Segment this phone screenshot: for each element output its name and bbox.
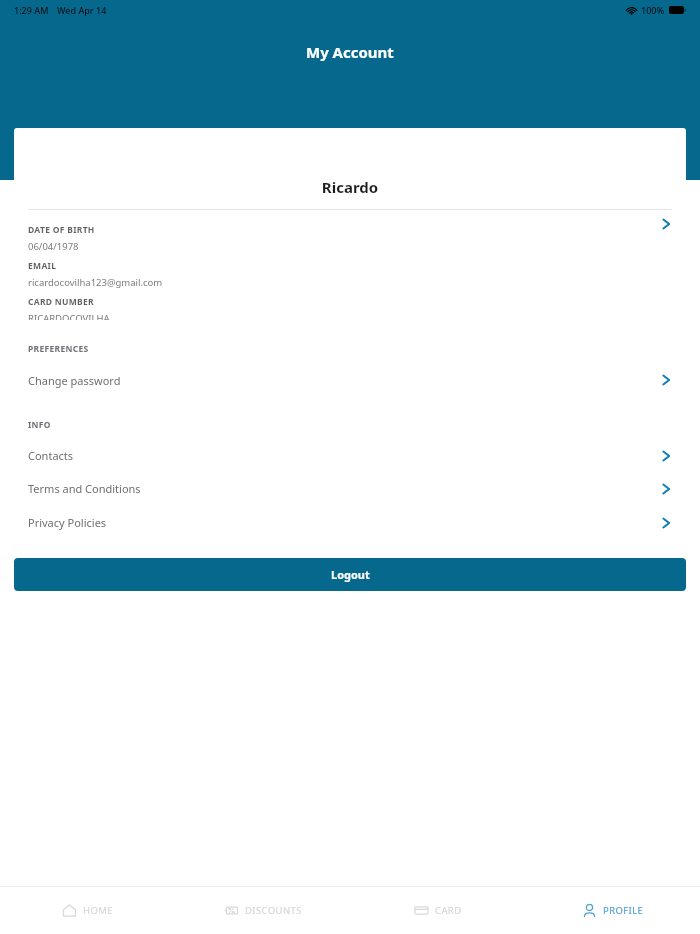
staticText: Wed Apr 14 xyxy=(57,4,107,16)
staticText: CARD xyxy=(435,904,462,917)
staticText: RICARDOCOVILHA xyxy=(28,312,110,320)
staticText: Logout xyxy=(331,567,370,582)
button[interactable]: Privacy Policies xyxy=(14,505,686,540)
staticText: DISCOUNTS xyxy=(245,904,302,917)
button[interactable]: PROFILE xyxy=(525,887,700,934)
button[interactable]: DISCOUNTS xyxy=(175,887,350,934)
staticText: EMAIL xyxy=(28,260,57,272)
staticText: HOME xyxy=(83,904,113,917)
button[interactable]: Change password xyxy=(14,363,686,397)
staticText: My Account xyxy=(306,42,394,62)
staticText: Change password xyxy=(28,373,121,388)
button[interactable]: CARD xyxy=(350,887,525,934)
staticText: Contacts xyxy=(28,448,74,463)
staticText: 06/04/1978 xyxy=(28,240,79,253)
staticText: PROFILE xyxy=(603,904,644,917)
staticText: Ricardo xyxy=(14,177,686,197)
staticText: CARD NUMBER xyxy=(28,296,94,308)
staticText: PREFERENCES xyxy=(28,343,89,355)
staticText: 100% xyxy=(641,4,665,16)
staticText: DATE OF BIRTH xyxy=(28,224,95,236)
staticText: Privacy Policies xyxy=(28,515,107,530)
staticText: Terms and Conditions xyxy=(28,481,141,496)
staticText: 1:29 AM xyxy=(14,4,49,16)
button[interactable]: Terms and Conditions xyxy=(14,472,686,505)
staticText: INFO xyxy=(28,419,51,431)
button[interactable]: Ricardo xyxy=(14,128,686,320)
staticText: ricardocovilha123@gmail.com xyxy=(28,276,163,289)
button[interactable]: Logout xyxy=(14,558,686,591)
button[interactable]: Contacts xyxy=(14,439,686,472)
button[interactable]: HOME xyxy=(0,887,175,934)
